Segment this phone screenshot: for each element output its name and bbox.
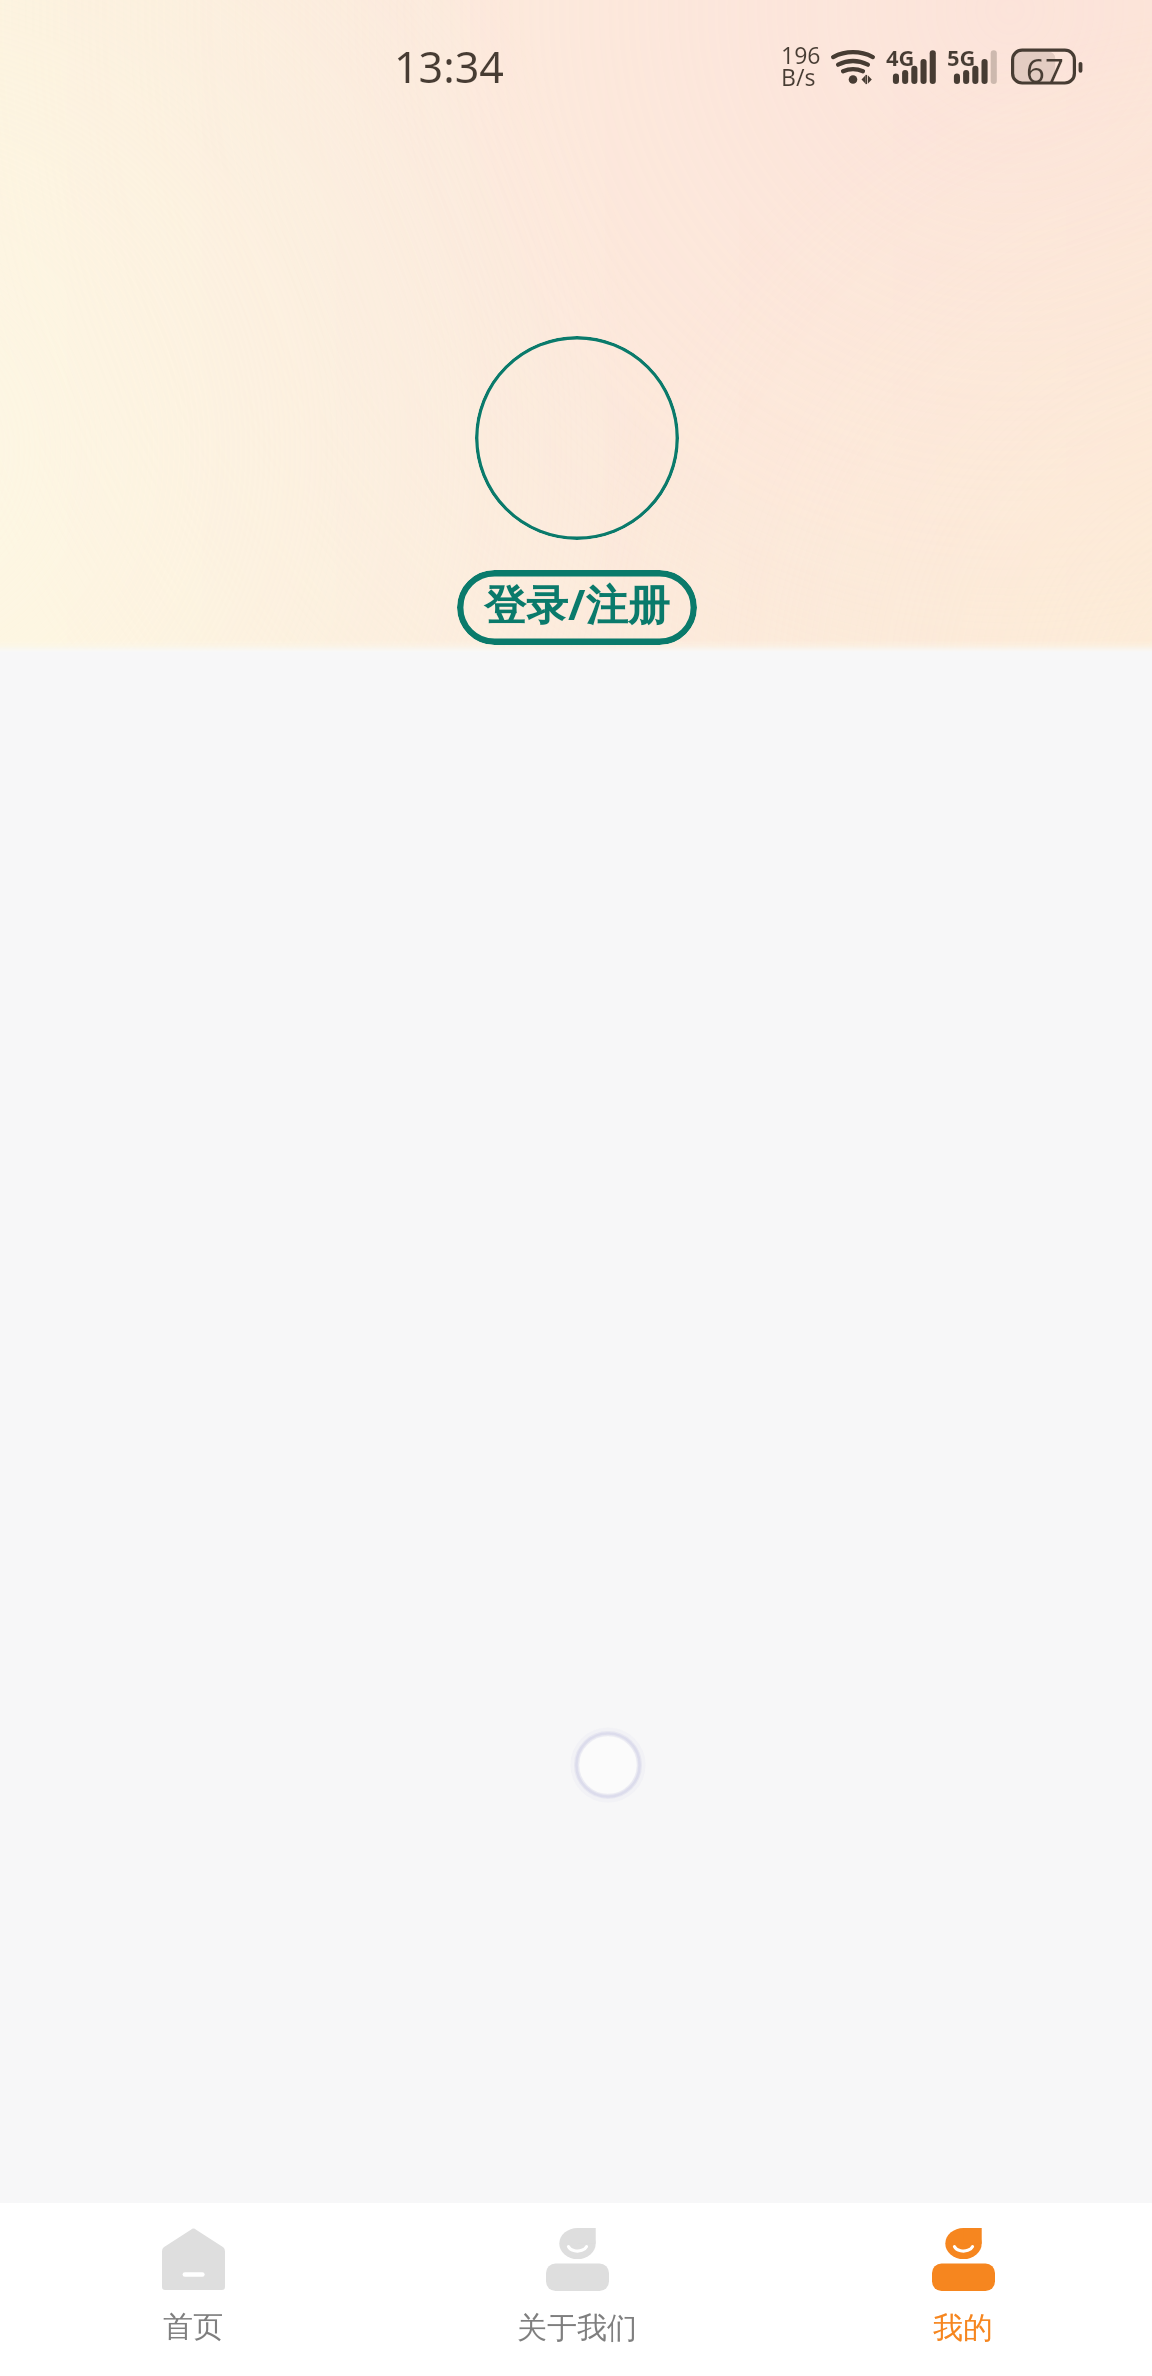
staticText: 关于我们 [517,2309,637,2347]
staticText: 67 [1026,48,1064,88]
staticText: 4G [886,42,915,72]
staticText: 196 [781,39,821,70]
button[interactable]: 首页 [1,2203,385,2376]
staticText: 13:34 [394,37,504,96]
staticText: 首页 [163,2308,223,2346]
staticText: 登录/注册 [484,575,670,632]
button[interactable]: 关于我们 [385,2203,769,2376]
button[interactable]: 登录/注册 [457,570,697,645]
button[interactable]: Avatar [475,336,679,540]
button[interactable]: 我的 [771,2203,1152,2376]
staticText: 我的 [933,2309,993,2347]
staticText: 5G [947,42,976,72]
staticText: B/s [781,61,816,92]
